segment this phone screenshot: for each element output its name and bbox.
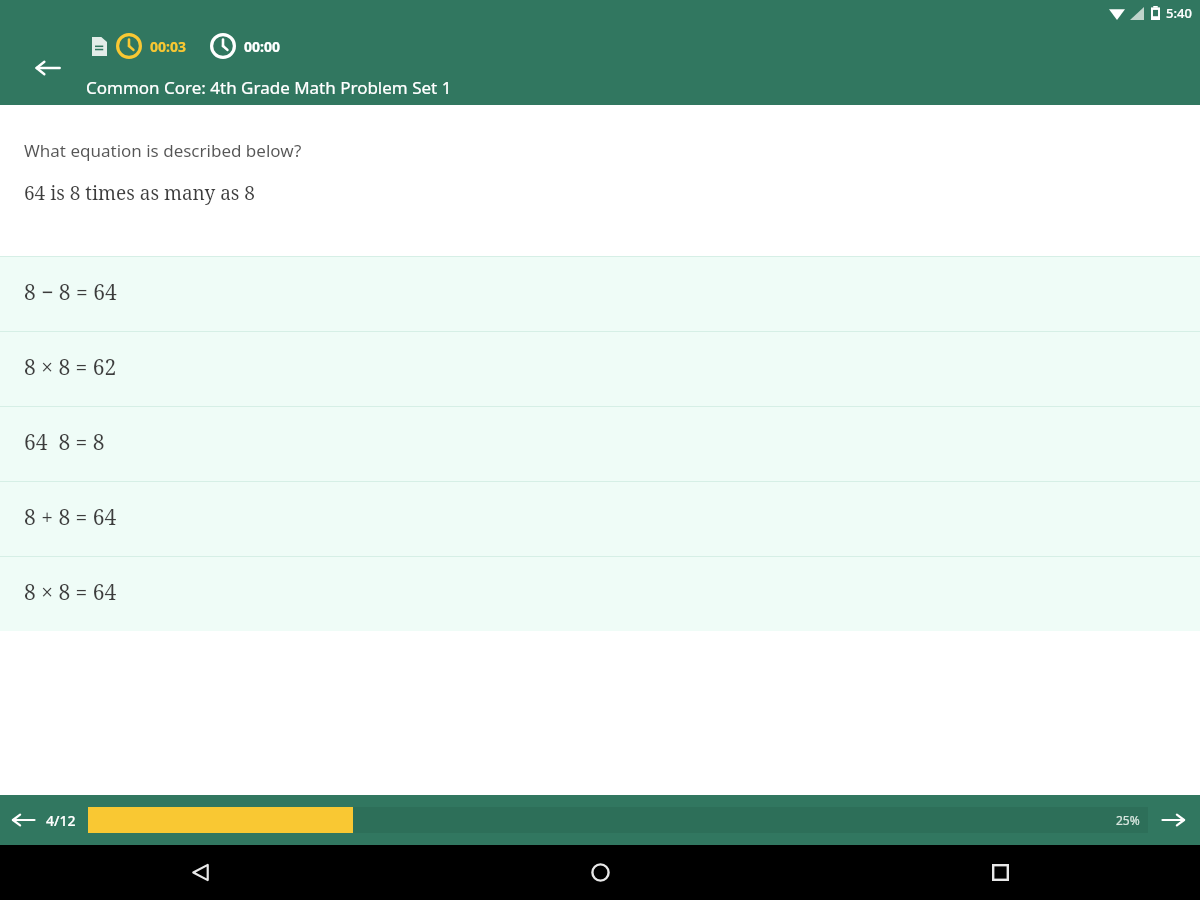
button[interactable]: 8 + 8 = 64 [0,481,1200,556]
staticText: 25% [1116,812,1140,828]
staticText: 64 is 8 times as many as 8 [24,180,255,206]
staticText: Common Core: 4th Grade Math Problem Set … [86,76,452,99]
button[interactable]: Previous [0,795,46,845]
staticText: 00:00 [244,37,280,56]
staticText: 8 × 8 = 64 [24,578,117,607]
staticText: 64 8 = 8 [24,428,105,457]
staticText: 4/12 [46,811,76,830]
button[interactable]: Back [24,44,72,92]
staticText: 8 − 8 = 64 [24,278,117,307]
staticText: 00:03 [150,37,186,56]
button[interactable]: Home [400,845,800,900]
staticText: What equation is described below? [24,139,302,162]
button[interactable]: 8 × 8 = 62 [0,331,1200,406]
staticText: 8 + 8 = 64 [24,503,117,532]
button[interactable]: Next [1148,795,1200,845]
button[interactable]: 8 − 8 = 64 [0,256,1200,331]
button[interactable]: Recents [800,845,1200,900]
button[interactable]: Back [0,845,400,900]
button[interactable]: 8 × 8 = 64 [0,556,1200,631]
staticText: 8 × 8 = 62 [24,353,117,382]
staticText: 5:40 [1166,4,1192,22]
button[interactable]: 64 8 = 8 [0,406,1200,481]
